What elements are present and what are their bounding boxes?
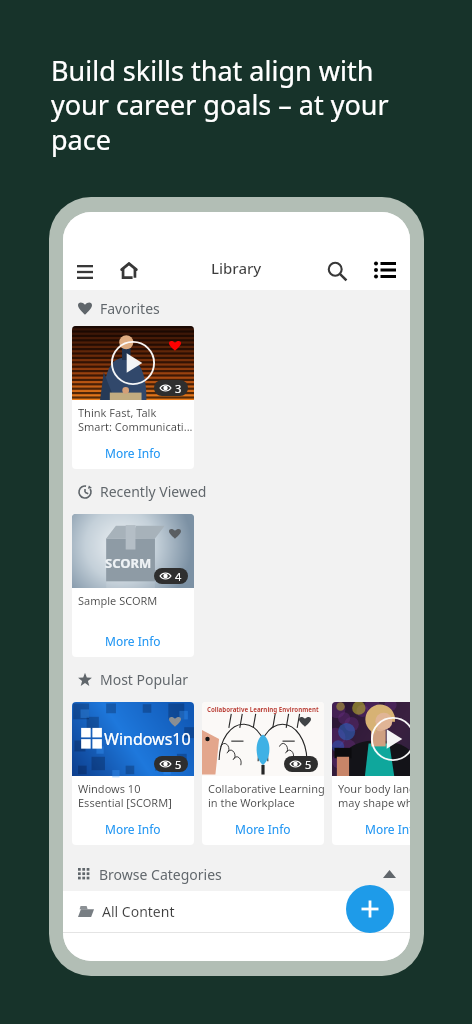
staticText: Favorites	[100, 299, 160, 318]
button[interactable]: Collaborative Learning Environment	[202, 702, 324, 845]
button[interactable]: Add	[346, 885, 394, 933]
button[interactable]: Search	[320, 254, 354, 288]
button[interactable]: Menu	[68, 255, 102, 289]
staticText: Recently Viewed	[100, 482, 207, 501]
staticText: Sample SCORM	[78, 593, 194, 608]
button[interactable]: Browse Categories	[78, 857, 396, 891]
staticText: Build skills that align with your career…	[51, 52, 389, 158]
button[interactable]: Windows10	[72, 702, 194, 845]
staticText: Your body language may shape who...	[338, 781, 410, 810]
button[interactable]: All Content	[78, 891, 410, 932]
button[interactable]: Home	[112, 253, 146, 287]
staticText: 3	[175, 381, 182, 396]
staticText: All Content	[102, 902, 175, 921]
staticText: SCORM	[105, 554, 152, 572]
staticText: Library	[211, 258, 262, 278]
staticText: More Info	[235, 821, 291, 837]
button[interactable]: Your body language may shape who...	[332, 702, 410, 845]
button[interactable]: 3	[72, 326, 194, 469]
staticText: More Info	[105, 633, 161, 649]
staticText: More Info	[105, 821, 161, 837]
staticText: 5	[305, 757, 312, 772]
staticText: 4	[175, 569, 182, 584]
staticText: More Info	[365, 821, 410, 837]
button[interactable]: SCORM	[72, 514, 194, 657]
staticText: Browse Categories	[99, 865, 222, 884]
staticText: More Info	[105, 445, 161, 461]
staticText: Collaborative Learning in the Workplace	[208, 781, 324, 810]
staticText: Think Fast, Talk Smart: Communicati...	[78, 405, 194, 434]
button[interactable]: List view	[368, 253, 402, 287]
staticText: Windows 10 Essential [SCORM]	[78, 781, 194, 810]
staticText: Most Popular	[100, 670, 189, 689]
staticText: Collaborative Learning Environment	[207, 705, 319, 713]
staticText: Windows10	[104, 728, 191, 750]
staticText: 5	[175, 757, 182, 772]
